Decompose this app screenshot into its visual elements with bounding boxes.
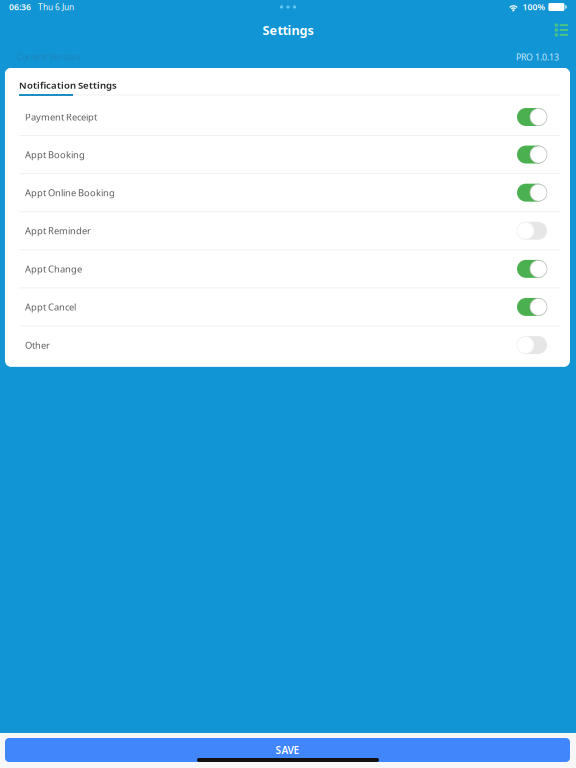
button[interactable]: Appt Reminder: [5, 212, 570, 250]
staticText: Other: [25, 339, 50, 351]
staticText: Settings: [262, 21, 313, 39]
staticText: Appt Online Booking: [25, 186, 115, 199]
staticText: SAVE: [275, 743, 299, 757]
button[interactable]: Menu: [548, 19, 575, 41]
button[interactable]: Appt Cancel: [5, 288, 570, 326]
staticText: Appt Change: [25, 262, 82, 275]
staticText: Appt Booking: [25, 148, 85, 161]
staticText: Payment Receipt: [25, 111, 97, 123]
staticText: 100%: [522, 1, 545, 13]
staticText: Appt Cancel: [25, 301, 76, 313]
staticText: Notification Settings: [19, 78, 117, 92]
staticText: 06:36: [9, 1, 31, 13]
staticText: Current Version:: [17, 51, 81, 63]
button[interactable]: Payment Receipt: [5, 99, 570, 136]
button[interactable]: Other: [5, 326, 570, 365]
button[interactable]: SAVE: [0, 738, 576, 762]
staticText: Appt Reminder: [25, 224, 91, 237]
button[interactable]: Appt Change: [5, 250, 570, 288]
staticText: Thu 6 Jun: [38, 1, 74, 13]
button[interactable]: Appt Online Booking: [5, 174, 570, 212]
button[interactable]: Appt Booking: [5, 136, 570, 174]
staticText: PRO 1.0.13: [516, 51, 559, 63]
